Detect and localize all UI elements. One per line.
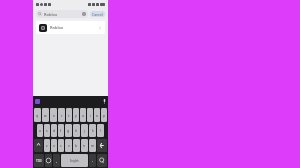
- staticText: r: [61, 113, 63, 118]
- staticText: j: [84, 128, 85, 133]
- staticText: a: [39, 128, 41, 133]
- button[interactable]: v: [65, 139, 72, 152]
- staticText: w: [44, 113, 47, 118]
- staticText: y: [75, 113, 77, 118]
- button[interactable]: p: [101, 108, 107, 122]
- button[interactable]: .: [89, 154, 96, 167]
- button[interactable]: f: [58, 124, 64, 137]
- staticText: English: [70, 159, 79, 163]
- button[interactable]: n: [81, 139, 88, 152]
- staticText: o: [96, 113, 99, 118]
- staticText: i: [90, 113, 91, 118]
- staticText: h: [75, 128, 78, 133]
- button[interactable]: Roblox: [36, 10, 88, 18]
- staticText: d: [53, 128, 56, 133]
- button[interactable]: Cancel: [90, 11, 105, 17]
- button[interactable]: Clear search: [82, 12, 86, 16]
- staticText: ,: [56, 158, 57, 163]
- staticText: Roblox: [44, 12, 58, 17]
- button[interactable]: m: [89, 139, 96, 152]
- staticText: f: [60, 128, 62, 133]
- staticText: c: [60, 143, 62, 148]
- button[interactable]: Roblox: [36, 21, 105, 34]
- staticText: b: [75, 143, 78, 148]
- button[interactable]: ,: [53, 154, 60, 167]
- button[interactable]: English: [61, 154, 88, 167]
- button[interactable]: c: [58, 139, 64, 152]
- button[interactable]: Search: [97, 154, 107, 167]
- button[interactable]: q: [34, 108, 41, 122]
- button[interactable]: Shift: [34, 139, 43, 152]
- button[interactable]: r: [58, 108, 65, 122]
- staticText: v: [68, 143, 70, 148]
- staticText: n: [83, 143, 86, 148]
- button[interactable]: l: [97, 124, 104, 137]
- button[interactable]: ?123: [34, 154, 44, 167]
- button[interactable]: s: [44, 124, 50, 137]
- button[interactable]: y: [73, 108, 79, 122]
- staticText: u: [82, 113, 85, 118]
- button[interactable]: a: [37, 124, 43, 137]
- staticText: z: [46, 143, 48, 148]
- staticText: x: [53, 143, 55, 148]
- button[interactable]: o: [94, 108, 100, 122]
- button[interactable]: i: [87, 108, 93, 122]
- button[interactable]: Emoji: [45, 154, 52, 167]
- staticText: ?123: [36, 159, 42, 163]
- staticText: .: [92, 158, 93, 163]
- staticText: m: [91, 143, 95, 148]
- staticText: g: [67, 128, 70, 133]
- button[interactable]: Voice input: [103, 99, 106, 104]
- button[interactable]: j: [81, 124, 88, 137]
- button[interactable]: Backspace: [97, 139, 107, 152]
- staticText: p: [103, 113, 106, 118]
- button[interactable]: Keyboard settings: [35, 99, 40, 104]
- button[interactable]: g: [65, 124, 72, 137]
- staticText: q: [36, 113, 39, 118]
- button[interactable]: w: [42, 108, 49, 122]
- staticText: k: [92, 128, 94, 133]
- staticText: e: [53, 113, 55, 118]
- staticText: Roblox: [50, 25, 64, 30]
- button[interactable]: k: [89, 124, 96, 137]
- staticText: s: [46, 128, 48, 133]
- button[interactable]: z: [44, 139, 50, 152]
- button[interactable]: h: [73, 124, 80, 137]
- staticText: l: [100, 128, 101, 133]
- button[interactable]: b: [73, 139, 80, 152]
- staticText: t: [68, 113, 70, 118]
- button[interactable]: d: [51, 124, 57, 137]
- button[interactable]: t: [66, 108, 72, 122]
- button[interactable]: x: [51, 139, 57, 152]
- staticText: Cancel: [92, 12, 103, 17]
- button[interactable]: u: [80, 108, 86, 122]
- button[interactable]: e: [50, 108, 57, 122]
